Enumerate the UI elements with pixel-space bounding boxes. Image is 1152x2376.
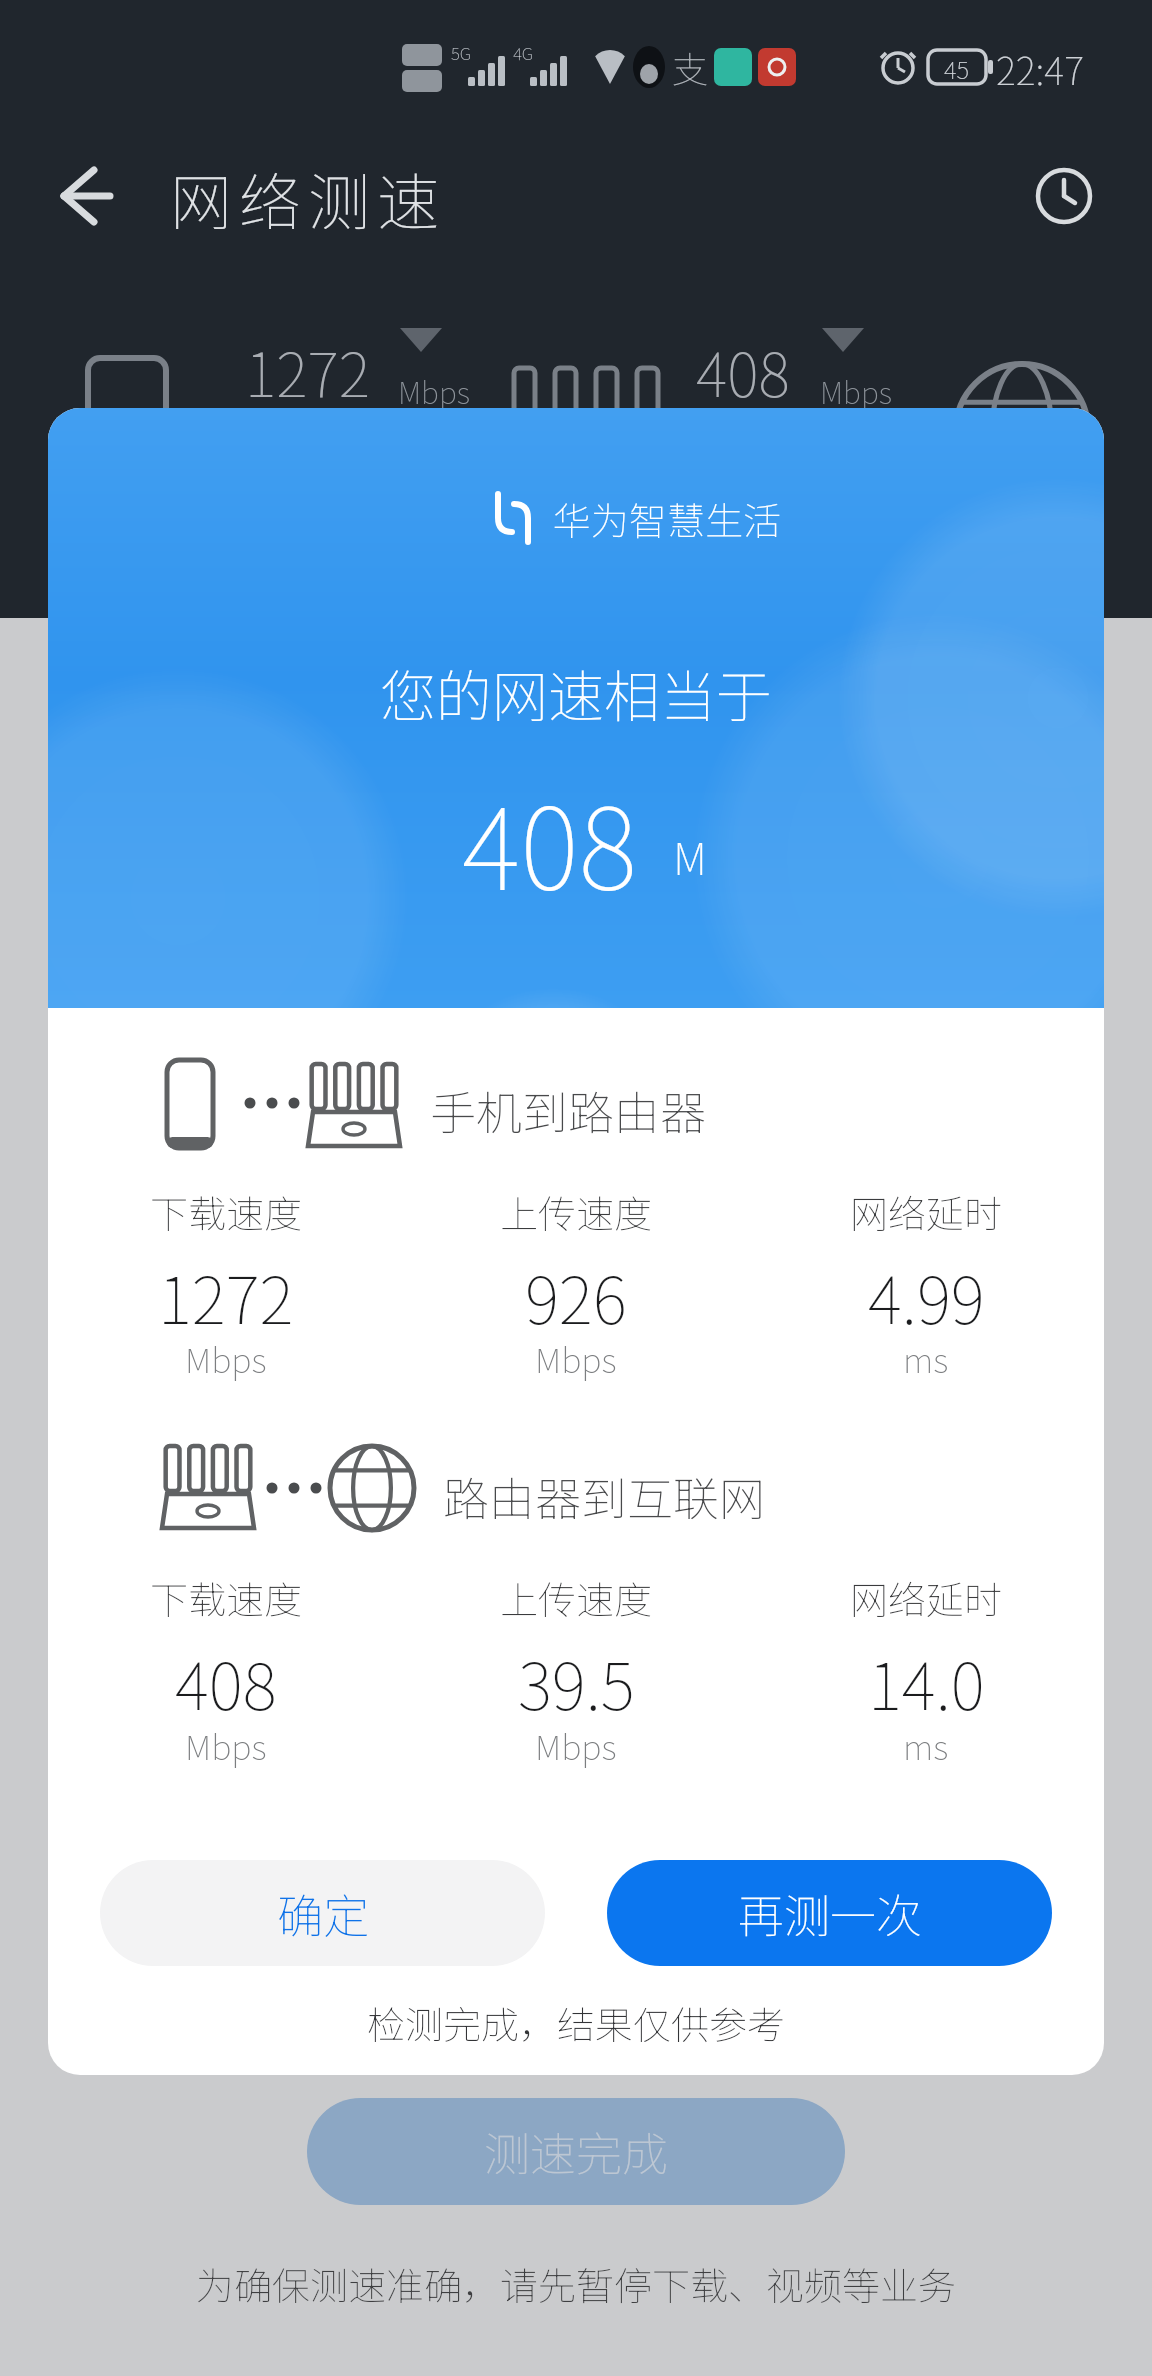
staticText: 926 <box>525 1249 627 1343</box>
staticText: ms <box>903 1721 949 1770</box>
button[interactable]: 确定 <box>100 1860 545 1966</box>
staticText: 路由器到互联网 <box>443 1463 765 1530</box>
staticText: 华为智慧生活 <box>553 491 782 546</box>
staticText: Mbps <box>535 1721 617 1770</box>
staticText: 14.0 <box>868 1635 985 1729</box>
staticText: 检测完成，结果仅供参考 <box>367 1995 786 2050</box>
staticText: 确定 <box>277 1880 369 1947</box>
staticText: 上传速度 <box>500 1184 653 1239</box>
staticText: 下载速度 <box>150 1570 303 1625</box>
staticText: 网络测速 <box>170 153 447 243</box>
button[interactable]: 测速完成 <box>307 2098 845 2205</box>
staticText: 为确保测速准确，请先暂停下载、视频等业务 <box>196 2256 957 2311</box>
staticText: 408 <box>462 760 638 920</box>
staticText: ms <box>903 1334 949 1383</box>
button[interactable]: 再测一次 <box>607 1860 1052 1966</box>
staticText: 上传速度 <box>500 1570 653 1625</box>
staticText: 45 <box>944 51 970 86</box>
staticText: 再测一次 <box>738 1880 922 1947</box>
staticText: 网络延时 <box>850 1570 1003 1625</box>
staticText: 1272 <box>245 327 371 414</box>
staticText: 22:47 <box>996 41 1084 96</box>
staticText: 网络延时 <box>850 1184 1003 1239</box>
staticText: 手机到路由器 <box>430 1077 706 1144</box>
staticText: 5G <box>451 40 472 65</box>
staticText: 39.5 <box>518 1635 635 1729</box>
staticText: Mbps <box>820 369 892 412</box>
staticText: 4.99 <box>868 1249 985 1343</box>
staticText: 您的网速相当于 <box>380 652 772 733</box>
staticText: 1272 <box>158 1249 294 1343</box>
staticText: Mbps <box>398 369 470 412</box>
staticText: 4G <box>513 40 534 65</box>
staticText: 支 <box>672 41 709 93</box>
staticText: M <box>673 824 707 888</box>
staticText: Mbps <box>185 1334 267 1383</box>
staticText: 408 <box>175 1635 277 1729</box>
staticText: Mbps <box>535 1334 617 1383</box>
staticText: 408 <box>696 327 790 414</box>
staticText: 下载速度 <box>150 1184 303 1239</box>
staticText: 测速完成 <box>484 2118 668 2185</box>
staticText: Mbps <box>185 1721 267 1770</box>
